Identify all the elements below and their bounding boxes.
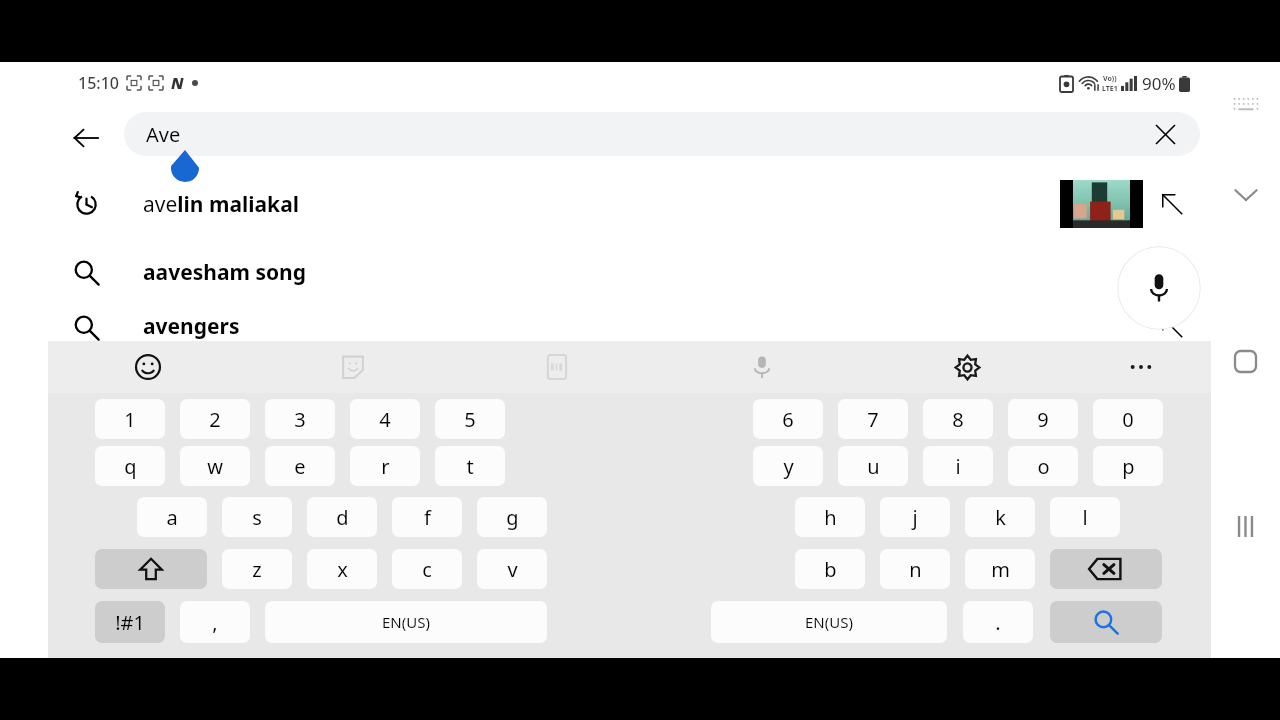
staticText: t (466, 453, 474, 480)
button[interactable]: 1 (95, 399, 165, 439)
staticText: , (212, 609, 218, 636)
staticText: p (1122, 453, 1135, 480)
button[interactable]: EN(US) (265, 601, 547, 643)
button[interactable]: 6 (753, 399, 823, 439)
button[interactable]: q (95, 446, 165, 486)
staticText: aavesham song (143, 258, 306, 287)
staticText: 15:10 (78, 72, 119, 94)
button[interactable]: d (307, 497, 377, 537)
button[interactable]: Search (1050, 601, 1162, 643)
staticText: 8 (952, 406, 964, 433)
staticText: avengers (143, 312, 240, 341)
staticText: i (955, 453, 961, 480)
button[interactable]: avelin maliakal (0, 174, 1280, 234)
button[interactable]: c (392, 549, 462, 589)
button[interactable]: . (963, 601, 1033, 643)
button[interactable]: h (795, 497, 865, 537)
button[interactable]: g (477, 497, 547, 537)
staticText: g (506, 504, 519, 531)
button[interactable]: Insert suggestion (1156, 311, 1188, 343)
staticText: f (424, 504, 431, 531)
staticText: v (507, 556, 518, 583)
staticText: w (207, 453, 223, 480)
staticText: 5 (464, 406, 476, 433)
staticText: 2 (209, 406, 221, 433)
button[interactable]: 4 (350, 399, 420, 439)
button[interactable]: !#1 (95, 601, 165, 643)
button[interactable]: l (1050, 497, 1120, 537)
button[interactable]: x (307, 549, 377, 589)
button[interactable]: i (923, 446, 993, 486)
staticText: a (166, 504, 178, 531)
staticText: k (995, 504, 1006, 531)
button[interactable]: z (222, 549, 292, 589)
button[interactable]: EN(US) (711, 601, 947, 643)
staticText: r (381, 453, 390, 480)
button[interactable]: 3 (265, 399, 335, 439)
staticText: c (422, 556, 432, 583)
staticText: m (991, 556, 1010, 583)
button[interactable]: r (350, 446, 420, 486)
button[interactable]: , (180, 601, 250, 643)
button[interactable]: u (838, 446, 908, 486)
staticText: Vo)) (1103, 74, 1117, 84)
staticText: n (909, 556, 922, 583)
staticText: s (252, 504, 262, 531)
button[interactable]: 0 (1093, 399, 1163, 439)
staticText: 0 (1122, 406, 1134, 433)
button[interactable]: aavesham song (0, 242, 1280, 302)
staticText: LTE1 (1102, 84, 1118, 94)
staticText: o (1037, 453, 1050, 480)
button[interactable]: more (1119, 345, 1163, 389)
button[interactable]: 7 (838, 399, 908, 439)
staticText: y (783, 453, 794, 480)
button[interactable]: 8 (923, 399, 993, 439)
button[interactable]: gif (535, 345, 579, 389)
staticText: 9 (1037, 406, 1049, 433)
button[interactable]: Home (1211, 343, 1280, 379)
button[interactable]: p (1093, 446, 1163, 486)
button[interactable]: o (1008, 446, 1078, 486)
staticText: 1 (124, 406, 136, 433)
button[interactable]: Ave (124, 112, 1200, 156)
button[interactable]: y (753, 446, 823, 486)
button[interactable]: f (392, 497, 462, 537)
staticText: avelin maliakal (143, 190, 299, 219)
staticText: e (294, 453, 306, 480)
button[interactable]: b (795, 549, 865, 589)
button[interactable]: Backspace (1050, 549, 1162, 589)
button[interactable]: 9 (1008, 399, 1078, 439)
button[interactable]: m (965, 549, 1035, 589)
button[interactable]: 5 (435, 399, 505, 439)
button[interactable]: j (880, 497, 950, 537)
button[interactable]: Shift (95, 549, 207, 589)
button[interactable]: Voice search (1117, 246, 1201, 330)
button[interactable]: Clear query (1148, 117, 1182, 151)
button[interactable]: Show keyboard (1211, 88, 1280, 122)
button[interactable]: Hide keyboard (1211, 177, 1280, 213)
staticText: x (337, 556, 348, 583)
staticText: l (1082, 504, 1088, 531)
button[interactable]: e (265, 446, 335, 486)
button[interactable]: settings (945, 345, 989, 389)
button[interactable]: a (137, 497, 207, 537)
button[interactable]: t (435, 446, 505, 486)
button[interactable]: mic (740, 345, 784, 389)
button[interactable]: s (222, 497, 292, 537)
button[interactable]: Insert suggestion (1156, 188, 1188, 220)
button[interactable]: emoji (126, 345, 170, 389)
button[interactable]: Recent apps (1211, 508, 1280, 544)
staticText: N (171, 72, 184, 94)
staticText: u (867, 453, 880, 480)
button[interactable]: 2 (180, 399, 250, 439)
button[interactable]: Insert suggestion (1156, 256, 1188, 288)
button[interactable]: n (880, 549, 950, 589)
staticText: d (336, 504, 349, 531)
button[interactable]: sticker (331, 345, 375, 389)
button[interactable]: Back (64, 116, 108, 160)
staticText: 90% (1142, 72, 1176, 95)
staticText: j (912, 504, 918, 531)
button[interactable]: w (180, 446, 250, 486)
button[interactable]: v (477, 549, 547, 589)
button[interactable]: k (965, 497, 1035, 537)
